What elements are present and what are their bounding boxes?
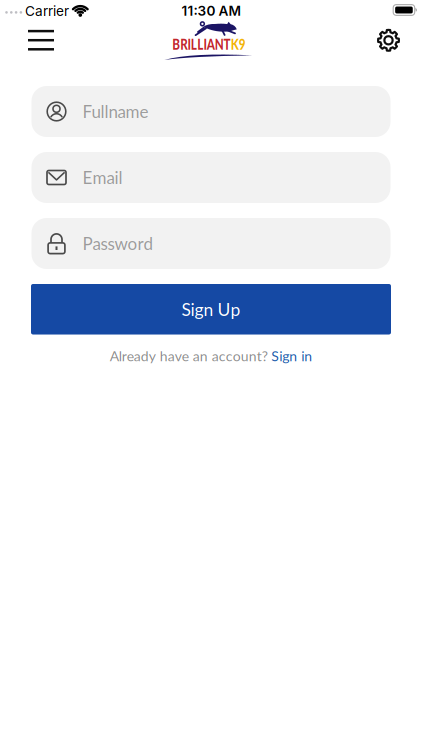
staticText: Sign in — [271, 347, 312, 364]
staticText: BRILLIANT — [163, 35, 236, 53]
button[interactable]: Sign Up — [31, 284, 391, 334]
staticText: Fullname — [82, 101, 148, 122]
staticText: Carrier — [25, 3, 69, 19]
staticText: Email — [82, 167, 122, 188]
button[interactable]: Sign in — [271, 347, 312, 364]
button[interactable]: Email — [31, 152, 390, 203]
staticText: Already have an account? — [110, 347, 268, 364]
button[interactable] — [366, 18, 410, 62]
button[interactable]: Fullname — [31, 86, 390, 137]
staticText: Password — [82, 233, 153, 254]
button[interactable] — [19, 18, 63, 62]
staticText: Sign Up — [181, 299, 240, 320]
staticText: K9 — [236, 35, 254, 53]
button[interactable]: Password — [31, 218, 390, 269]
staticText: 11:30 AM — [181, 3, 241, 19]
